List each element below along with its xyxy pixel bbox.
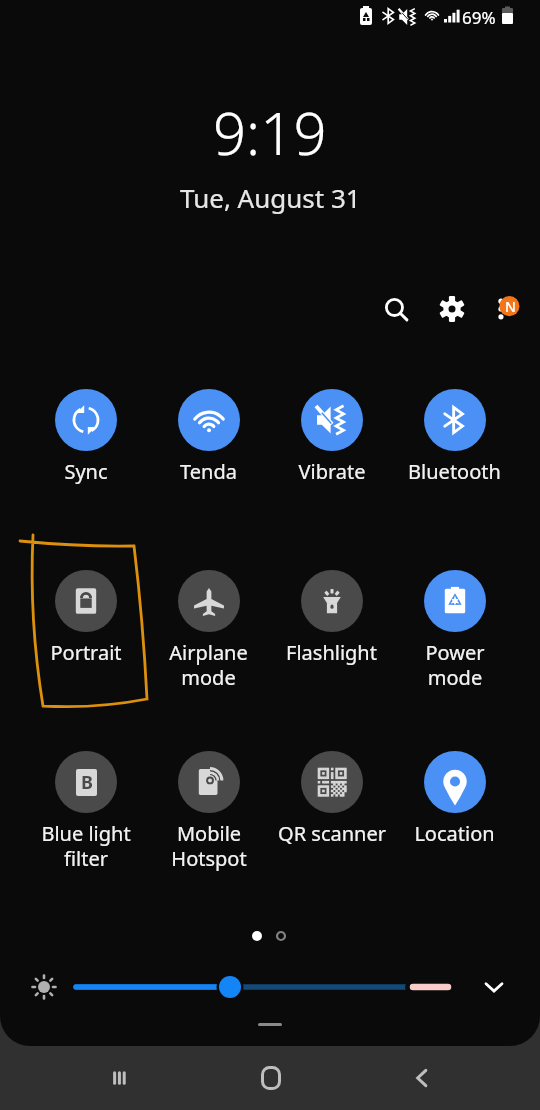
button[interactable]: Recents <box>43 1046 195 1110</box>
button[interactable]: More options <box>482 285 530 333</box>
staticText: Power mode <box>425 639 485 691</box>
button[interactable]: Airplane mode <box>147 570 270 691</box>
staticText: 69% <box>462 6 496 29</box>
staticText: 9:19 <box>213 93 327 172</box>
staticText: N <box>505 297 516 316</box>
staticText: Airplane mode <box>169 639 248 691</box>
button[interactable]: Back <box>346 1046 497 1110</box>
staticText: Mobile Hotspot <box>171 820 247 872</box>
button[interactable]: Settings <box>428 285 476 333</box>
button[interactable]: B <box>24 751 147 872</box>
staticText: Tenda <box>180 458 237 485</box>
staticText: Portrait <box>50 639 122 666</box>
button[interactable]: Vibrate <box>270 389 393 485</box>
staticText: Sync <box>64 458 108 485</box>
button[interactable]: Expand <box>472 965 516 1009</box>
staticText: B <box>81 770 93 795</box>
button[interactable]: Tenda <box>147 389 270 485</box>
button[interactable]: QR scanner <box>270 751 393 847</box>
staticText: Location <box>414 820 495 847</box>
button[interactable]: Mobile Hotspot <box>147 751 270 872</box>
button[interactable]: Flashlight <box>270 570 393 666</box>
button[interactable]: Bluetooth <box>393 389 516 485</box>
button[interactable]: Location <box>393 751 516 847</box>
staticText: Blue light filter <box>41 820 131 872</box>
staticText: Bluetooth <box>408 458 501 485</box>
staticText: Tue, August 31 <box>180 180 361 215</box>
button[interactable]: Sync <box>24 389 147 485</box>
button[interactable]: Portrait <box>24 570 147 666</box>
button[interactable]: Power mode <box>393 570 516 691</box>
staticText: QR scanner <box>278 820 386 847</box>
staticText: Flashlight <box>286 639 377 666</box>
staticText: Vibrate <box>298 458 366 485</box>
button[interactable]: Home <box>195 1046 346 1110</box>
button[interactable]: Search <box>372 285 420 333</box>
